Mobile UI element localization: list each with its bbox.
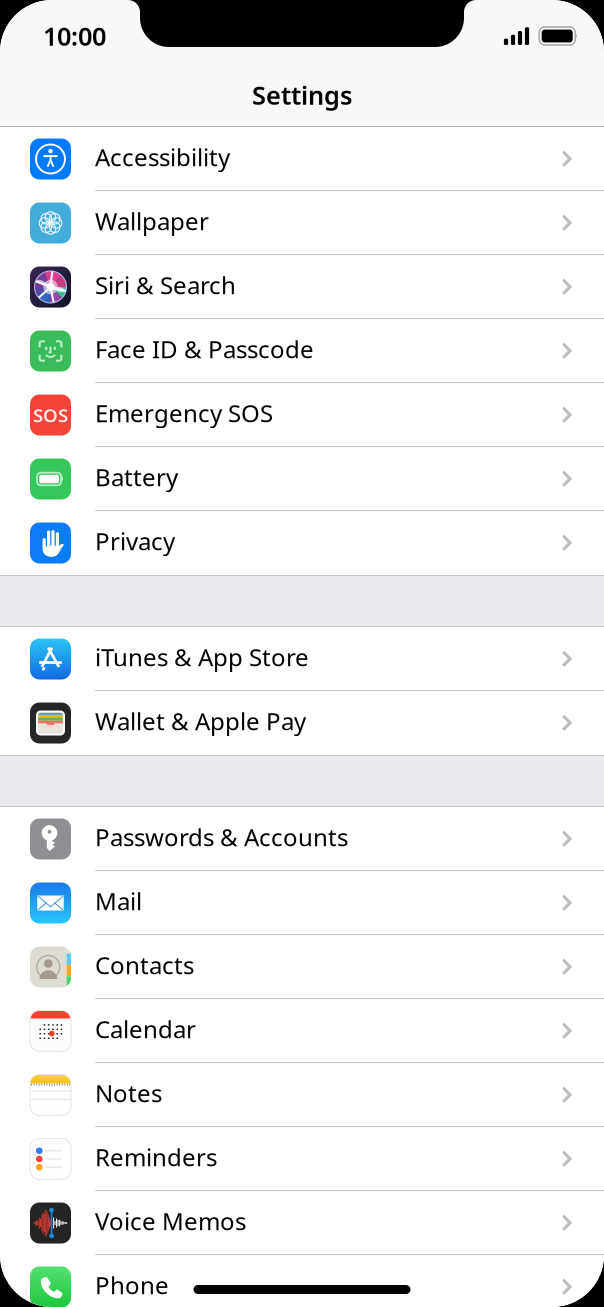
button[interactable]: Passwords & Accounts [0,807,604,871]
button[interactable]: Privacy [0,511,604,575]
staticText: Calendar [95,1013,196,1045]
staticText: SOS [33,403,68,427]
button[interactable]: Contacts [0,935,604,999]
staticText: Settings [252,78,352,112]
button[interactable]: Battery [0,447,604,511]
button[interactable]: Phone [0,1255,604,1307]
button[interactable]: Wallpaper [0,191,604,255]
staticText: Contacts [95,949,194,981]
button[interactable]: Accessibility [0,127,604,191]
staticText: Reminders [95,1141,217,1173]
button[interactable]: Voice Memos [0,1191,604,1255]
staticText: Wallet & Apple Pay [95,705,306,737]
staticText: 10:00 [43,19,106,53]
staticText: Privacy [95,525,175,557]
staticText: Emergency SOS [95,397,273,429]
staticText: Voice Memos [95,1205,246,1237]
button[interactable]: Wallet & Apple Pay [0,691,604,755]
staticText: iTunes & App Store [95,641,309,673]
button[interactable]: iTunes & App Store [0,627,604,691]
button[interactable]: Notes [0,1063,604,1127]
staticText: Accessibility [95,141,230,173]
staticText: Siri & Search [95,269,236,301]
button[interactable]: SOS [0,383,604,447]
staticText: Battery [95,461,178,493]
button[interactable]: Reminders [0,1127,604,1191]
staticText: Mail [95,885,142,917]
staticText: Notes [95,1077,162,1109]
button[interactable]: Calendar [0,999,604,1063]
staticText: Phone [95,1269,169,1301]
staticText: Passwords & Accounts [95,821,348,853]
staticText: Face ID & Passcode [95,333,314,365]
button[interactable]: Mail [0,871,604,935]
button[interactable]: Face ID & Passcode [0,319,604,383]
staticText: Wallpaper [95,205,209,237]
button[interactable]: Siri & Search [0,255,604,319]
